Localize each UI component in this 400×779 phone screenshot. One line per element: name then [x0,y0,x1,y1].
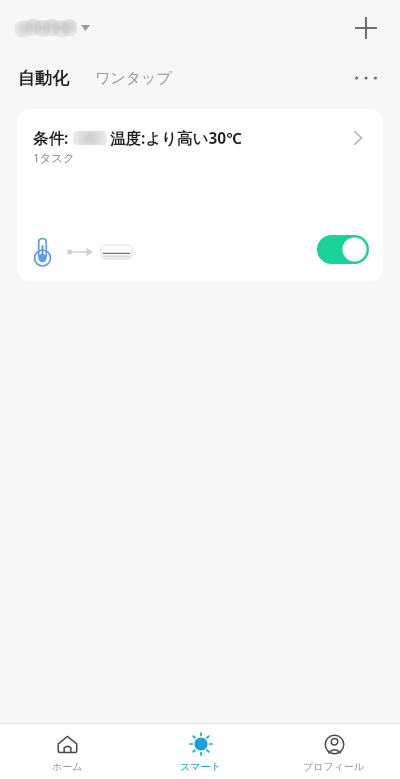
staticText: スマート [180,760,221,773]
button[interactable]: 自動化 [16,64,71,93]
button[interactable]: Add [344,6,388,50]
button[interactable] [16,16,92,39]
button[interactable]: Open automation details [339,119,377,157]
button[interactable]: 条件: [17,109,383,281]
staticText: 1タスク [33,150,75,166]
staticText: 自動化 [18,68,69,89]
staticText: プロフィール [303,760,365,773]
staticText: 条件: [33,127,69,148]
button[interactable]: More options [344,56,388,100]
button[interactable]: スマート [134,726,267,778]
button[interactable]: ワンタップ [93,65,174,92]
staticText: ワンタップ [95,69,172,88]
staticText: 温度:より高い30℃ [110,127,242,148]
staticText: ホーム [52,760,83,773]
button[interactable]: Toggle automation [317,235,369,264]
button[interactable]: ホーム [0,726,134,778]
button[interactable]: プロフィール [267,726,400,778]
